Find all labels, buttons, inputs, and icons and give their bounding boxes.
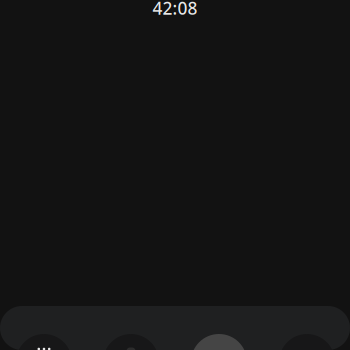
button[interactable]: Draw (191, 334, 247, 350)
button[interactable]: Tools (103, 334, 159, 350)
staticText: 42:08 (152, 0, 197, 19)
button[interactable]: Colour (279, 334, 335, 350)
button[interactable]: More (16, 334, 72, 350)
